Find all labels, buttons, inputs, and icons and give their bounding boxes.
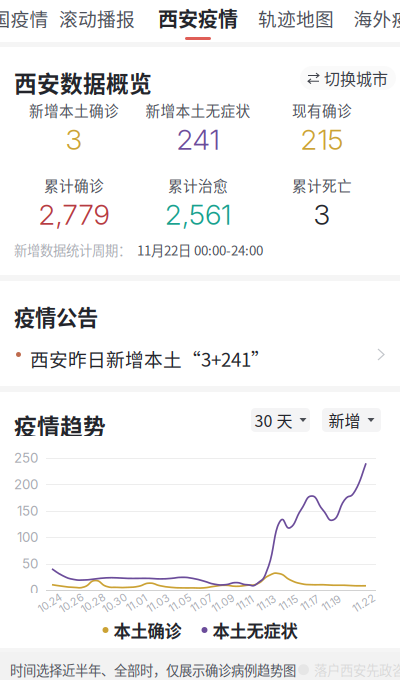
staticText: 241: [176, 123, 219, 157]
button[interactable]: 滚动播报: [0, 0, 84, 42]
staticText: 11.07: [190, 596, 214, 609]
staticText: 10.28: [80, 596, 107, 609]
staticText: 30 天: [254, 408, 292, 432]
button[interactable]: 30 天: [251, 408, 310, 432]
staticText: 2,779: [38, 198, 109, 232]
staticText: 11.05: [168, 596, 192, 609]
staticText: 11.11: [236, 596, 254, 609]
staticText: 11.17: [300, 596, 320, 609]
staticText: 滚动播报: [59, 4, 135, 31]
staticText: 轨迹地图: [258, 4, 334, 31]
staticText: 切换城市: [324, 66, 388, 90]
button[interactable]: 轨迹地图: [0, 0, 84, 42]
staticText: 100: [17, 529, 38, 545]
button[interactable]: 海外疫: [0, 0, 84, 42]
staticText: 215: [300, 123, 343, 157]
staticText: 累计确诊: [44, 174, 104, 196]
staticText: 10.24: [37, 596, 63, 609]
button[interactable]: 西安昨日新增本土“3+241”: [0, 334, 400, 376]
staticText: 国疫情: [0, 4, 48, 31]
staticText: 11.22: [351, 596, 376, 609]
staticText: 10.26: [58, 596, 85, 609]
staticText: 11.03: [146, 596, 171, 609]
staticText: 11.09: [211, 596, 236, 609]
staticText: 200: [14, 476, 38, 492]
staticText: 50: [22, 555, 38, 572]
staticText: 3: [65, 123, 82, 157]
staticText: 本土确诊: [113, 617, 181, 643]
staticText: 累计治愈: [168, 174, 228, 196]
staticText: 11.15: [278, 596, 298, 609]
staticText: 新增本土确诊: [29, 99, 119, 121]
staticText: 西安疫情: [158, 3, 238, 32]
staticText: 11.01: [126, 596, 148, 609]
staticText: 11月22日 00:00-24:00: [131, 240, 263, 259]
staticText: 海外疫: [353, 4, 400, 31]
staticText: 11.19: [321, 596, 342, 609]
staticText: 新增: [328, 408, 360, 432]
staticText: 150: [17, 503, 38, 519]
staticText: 3: [313, 198, 330, 232]
staticText: 现有确诊: [292, 99, 352, 121]
staticText: 0: [30, 582, 38, 598]
staticText: 11.13: [256, 596, 277, 609]
staticText: 2,561: [165, 198, 231, 232]
staticText: 250: [14, 450, 38, 466]
button[interactable]: 新增: [322, 408, 381, 432]
staticText: 本土无症状: [212, 617, 297, 643]
button[interactable]: 西安疫情: [0, 0, 84, 42]
staticText: 累计死亡: [292, 174, 352, 196]
staticText: 疫情公告: [14, 301, 98, 332]
staticText: 新增本土无症状: [145, 99, 250, 121]
staticText: 西安数据概览: [14, 66, 152, 99]
button[interactable]: 国疫情: [0, 0, 84, 42]
staticText: 10.30: [101, 596, 128, 609]
staticText: 新增数据统计周期：: [14, 240, 131, 259]
staticText: 时间选择近半年、全部时，仅展示确诊病例趋势图: [10, 660, 296, 679]
staticText: 落户西安先政咨询: [314, 660, 400, 679]
button[interactable]: 切换城市: [300, 66, 396, 90]
staticText: 疫情趋势: [14, 409, 106, 442]
staticText: 西安昨日新增本土“3+241”: [30, 345, 270, 372]
